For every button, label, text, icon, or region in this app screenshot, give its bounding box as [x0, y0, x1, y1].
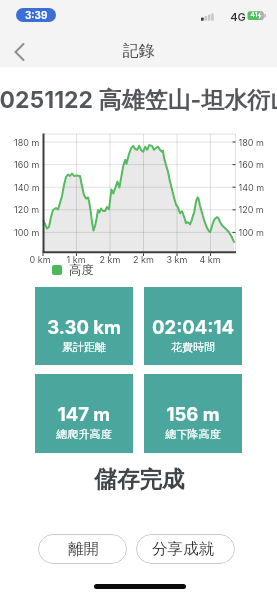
staticText: 3.30 km — [35, 316, 133, 338]
staticText: 總下降高度 — [144, 427, 242, 441]
staticText: 累計距離 — [35, 340, 133, 354]
staticText: 總爬升高度 — [35, 427, 133, 441]
staticText: 分享成就 — [152, 539, 214, 559]
staticText: 3:39 — [25, 9, 48, 21]
button[interactable]: 02:04:14 — [144, 287, 242, 365]
staticText: 156 m — [144, 403, 242, 425]
staticText: 高度 — [69, 262, 103, 278]
button[interactable]: 156 m — [144, 374, 242, 453]
button[interactable]: 3.30 km — [35, 287, 133, 365]
button[interactable]: 離開 — [38, 534, 127, 564]
staticText: 花費時間 — [144, 340, 242, 354]
button[interactable]: 147 m — [35, 374, 133, 453]
staticText: 儲存完成 — [1, 465, 277, 493]
button[interactable]: 分享成就 — [136, 534, 235, 564]
staticText: 記錄 — [0, 41, 277, 61]
staticText: 147 m — [35, 403, 133, 425]
staticText: 41 — [248, 11, 260, 19]
staticText: 4G — [228, 10, 248, 23]
staticText: 離開 — [68, 539, 99, 559]
button[interactable] — [6, 40, 30, 64]
staticText: 02:04:14 — [144, 316, 242, 338]
